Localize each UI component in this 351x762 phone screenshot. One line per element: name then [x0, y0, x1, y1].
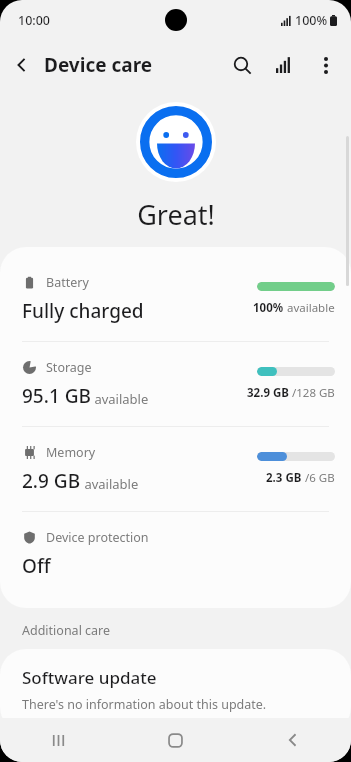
button[interactable]: Usage statistics — [263, 44, 305, 86]
staticText: Software update — [22, 666, 157, 689]
staticText: available — [81, 475, 139, 493]
button[interactable]: Battery — [0, 257, 351, 341]
button[interactable]: Back — [0, 43, 44, 87]
staticText: 95.1 GB — [22, 383, 91, 409]
staticText: 2.3 GB — [266, 470, 302, 486]
staticText: There's no information about this update… — [22, 696, 267, 713]
button[interactable]: More options — [305, 44, 347, 86]
staticText: available — [91, 390, 149, 408]
staticText: Additional care — [22, 622, 111, 639]
button[interactable]: Memory — [0, 427, 351, 511]
button[interactable]: Storage — [0, 342, 351, 426]
staticText: Off — [22, 553, 51, 579]
button[interactable]: Home — [117, 718, 234, 762]
staticText: /6 GB — [302, 470, 335, 486]
staticText: 100% — [253, 300, 284, 316]
staticText: available — [284, 300, 335, 316]
button[interactable]: Search — [221, 44, 263, 86]
staticText: 10:00 — [18, 12, 51, 29]
staticText: Device care — [44, 52, 153, 78]
staticText: Great! — [137, 196, 215, 233]
button[interactable]: Device protection — [0, 512, 351, 596]
button[interactable]: Software update — [0, 649, 351, 733]
staticText: Storage — [46, 359, 92, 376]
staticText: 2.9 GB — [22, 468, 81, 494]
button[interactable]: Back — [234, 718, 351, 762]
staticText: /128 GB — [289, 385, 335, 401]
button[interactable]: Recents — [0, 718, 117, 762]
staticText: 100% — [295, 12, 328, 29]
staticText: 32.9 GB — [247, 385, 289, 401]
staticText: Fully charged — [22, 298, 144, 324]
staticText: Battery — [46, 274, 89, 291]
staticText: Device protection — [46, 529, 149, 546]
staticText: Memory — [46, 444, 96, 461]
